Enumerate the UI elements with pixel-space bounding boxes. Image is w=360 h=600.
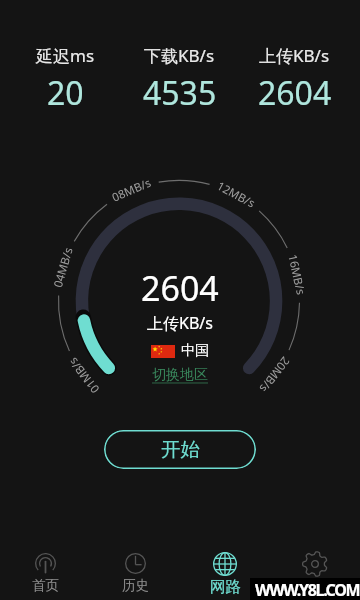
staticText: 2604 <box>141 265 219 311</box>
staticText: 开始 <box>161 437 200 462</box>
button[interactable]: 切换地区 <box>152 366 208 384</box>
staticText: 延迟ms <box>36 44 95 67</box>
staticText: WWW.Y8L.COM <box>255 579 360 600</box>
button[interactable]: 开始 <box>104 430 256 469</box>
button[interactable]: Settings <box>270 550 360 577</box>
staticText: 上传KB/s <box>147 312 213 334</box>
staticText: 切换地区 <box>152 366 208 384</box>
button[interactable]: 网路 <box>180 550 270 597</box>
button[interactable]: 历史 <box>90 550 180 594</box>
staticText: 4535 <box>143 71 217 115</box>
staticText: 20 <box>47 71 84 115</box>
staticText: 下载KB/s <box>144 44 215 67</box>
staticText: 历史 <box>122 577 149 594</box>
staticText: 中国 <box>181 342 209 360</box>
staticText: 网路 <box>210 577 241 597</box>
staticText: 上传KB/s <box>259 44 330 67</box>
button[interactable]: 首页 <box>0 550 90 594</box>
staticText: 2604 <box>258 71 332 115</box>
staticText: 首页 <box>32 577 59 594</box>
